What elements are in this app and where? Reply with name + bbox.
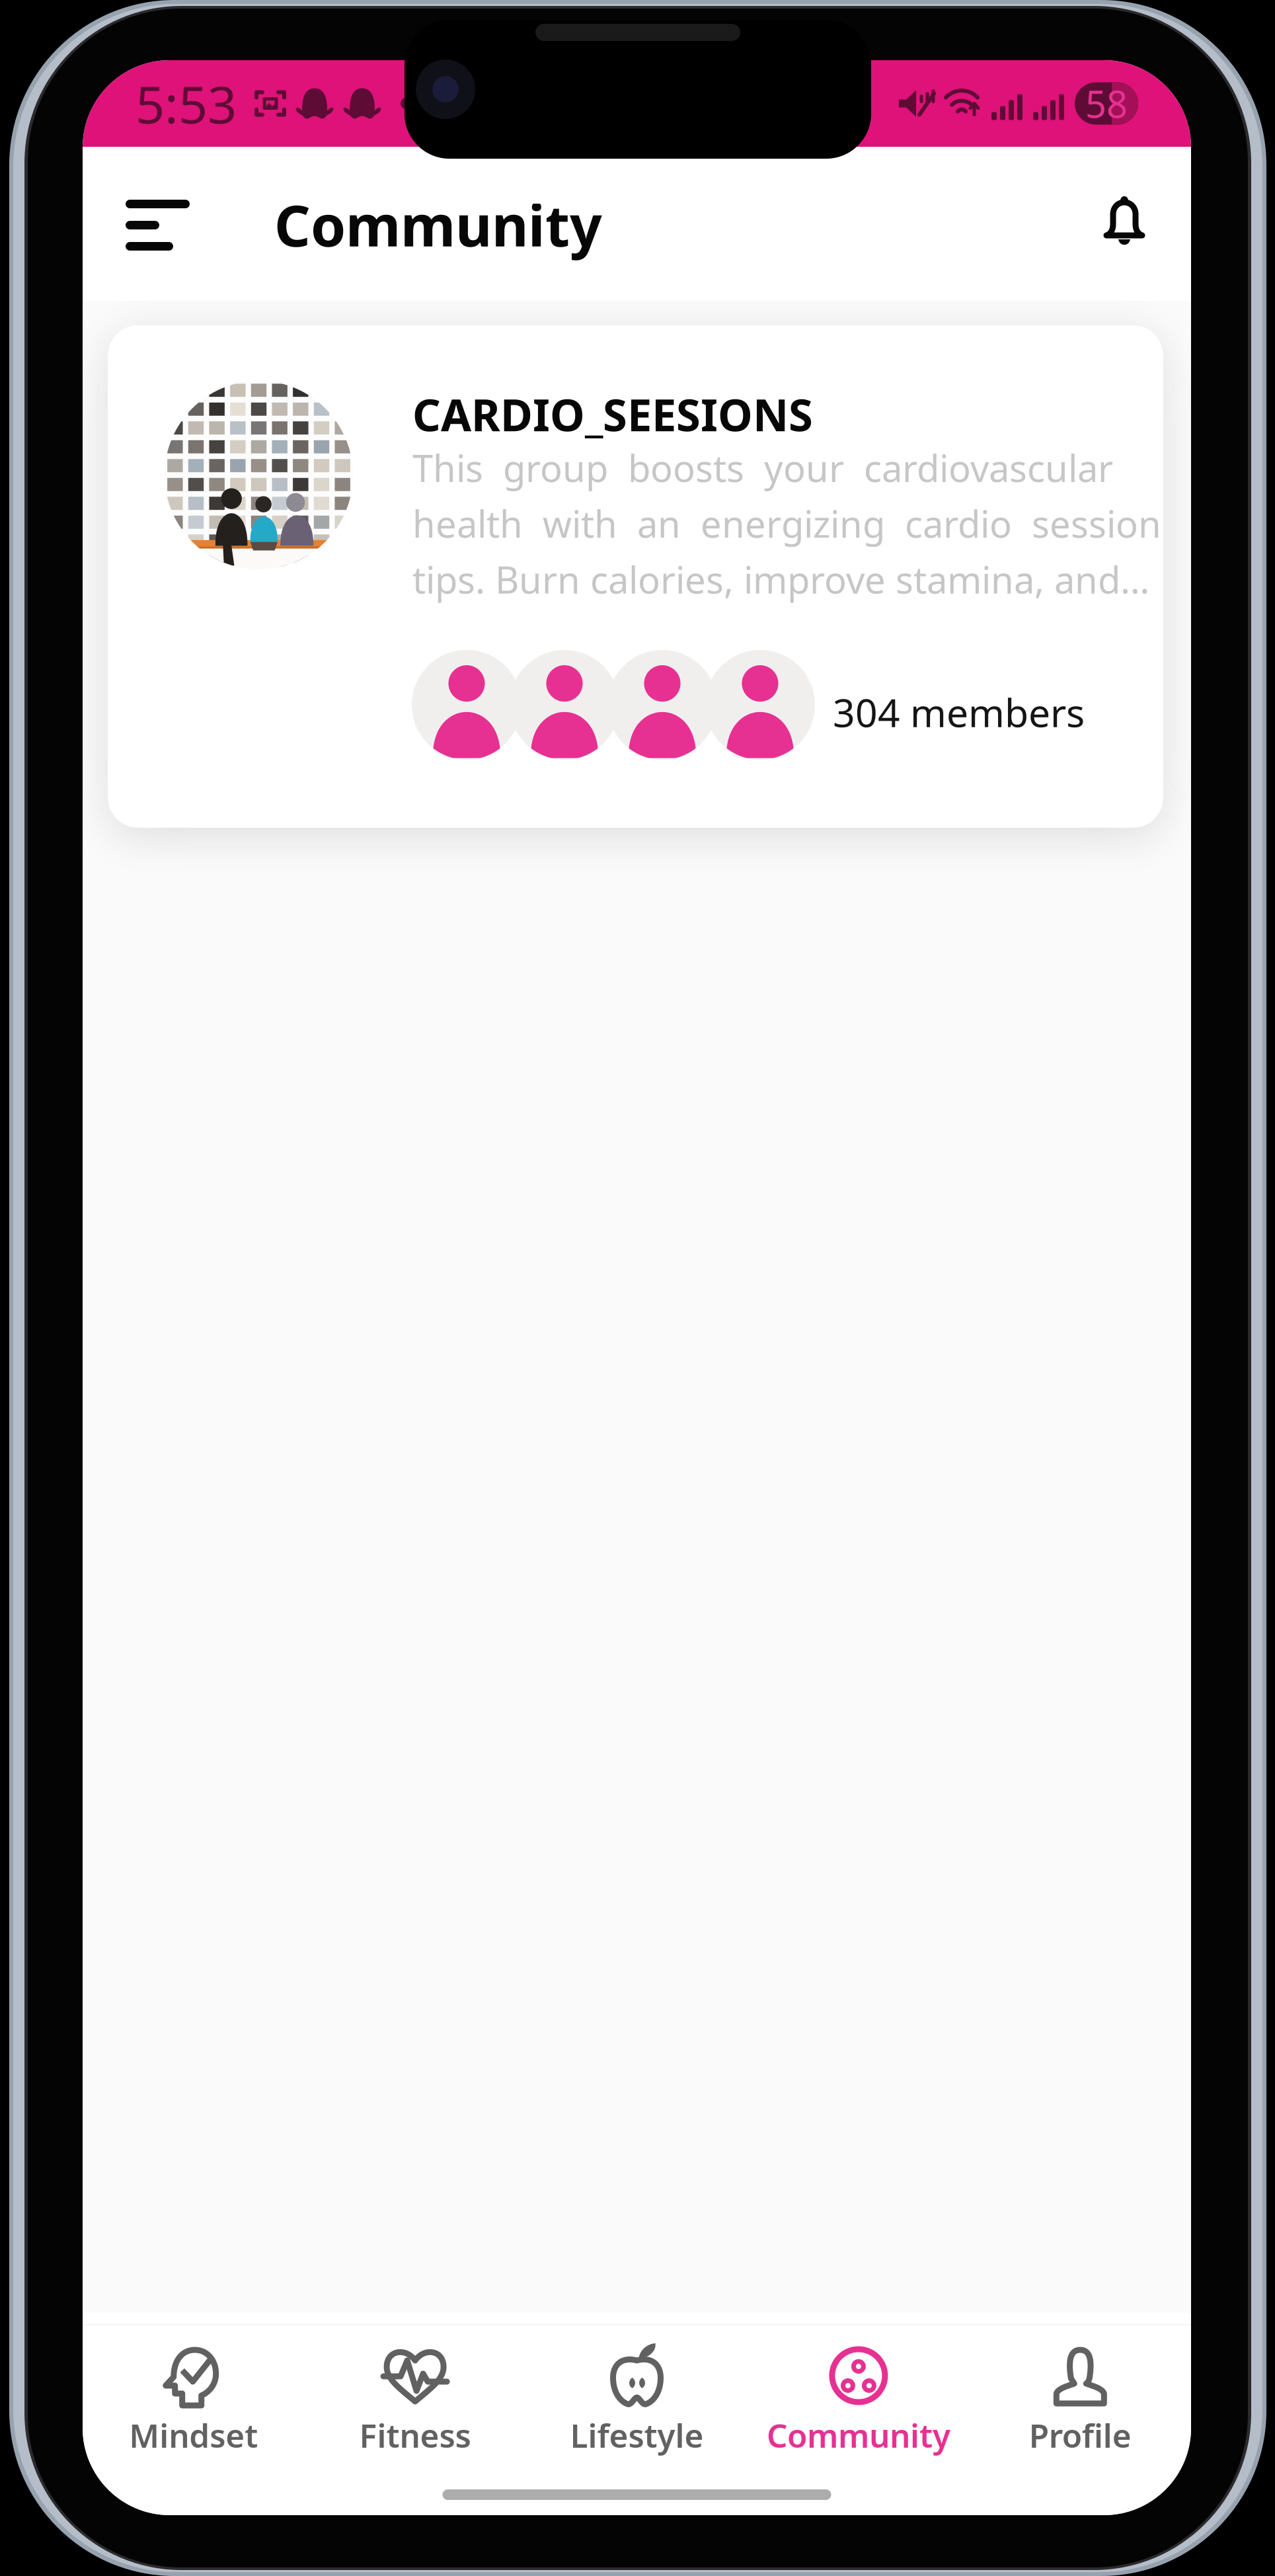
button[interactable]: Menu [126,163,225,262]
button[interactable]: CARDIO_SEESIONS [108,325,1163,828]
staticText: Mindset [129,2413,258,2457]
staticText: CARDIO_SEESIONS [412,385,813,443]
staticText: Fitness [359,2413,471,2457]
button[interactable]: Lifestyle [526,2342,748,2487]
button[interactable]: Mindset [83,2342,304,2487]
staticText: 304 members [833,686,1085,738]
staticText: Profile [1029,2413,1131,2457]
staticText: Community [274,187,602,262]
staticText: tips. Burn calories, improve stamina, an… [412,555,1149,604]
staticText: Lifestyle [570,2413,704,2457]
staticText: This group boosts your cardiovascular [412,443,1113,492]
staticText: health with an energizing cardio session [412,499,1161,548]
button[interactable]: Notifications [1083,181,1166,264]
staticText: 58 [1085,79,1128,128]
staticText: 5:53 [135,70,237,137]
button[interactable]: Profile [969,2342,1191,2487]
button[interactable]: Community [748,2342,969,2487]
staticText: Community [767,2413,950,2457]
button[interactable]: Fitness [304,2342,526,2487]
